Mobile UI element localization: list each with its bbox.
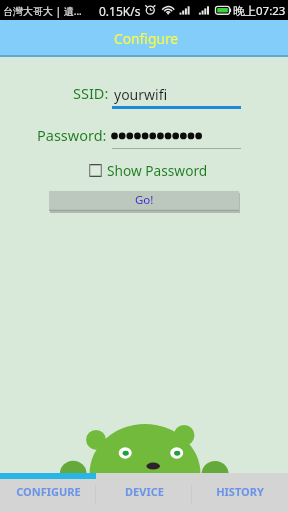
staticText: HISTORY xyxy=(216,484,264,499)
button[interactable]: DEVICE xyxy=(96,473,192,512)
staticText: Go! xyxy=(135,192,154,208)
button[interactable]: HISTORY xyxy=(192,473,288,512)
button[interactable]: Show Password xyxy=(89,161,208,180)
staticText: Password: xyxy=(37,125,107,145)
staticText: 晚上07:23 xyxy=(233,3,286,19)
staticText: Show Password xyxy=(107,161,208,180)
staticText: DEVICE xyxy=(125,484,164,499)
button[interactable]: CONFIGURE xyxy=(0,473,96,512)
staticText: yourwifi xyxy=(114,85,168,104)
staticText: SSID: xyxy=(73,83,109,103)
button[interactable]: Go! xyxy=(49,191,239,211)
staticText: 台灣大哥大 | 遺... xyxy=(3,4,82,18)
staticText: 0.15K/s xyxy=(99,3,141,19)
staticText: CONFIGURE xyxy=(16,484,81,499)
staticText: Configure xyxy=(114,29,179,48)
